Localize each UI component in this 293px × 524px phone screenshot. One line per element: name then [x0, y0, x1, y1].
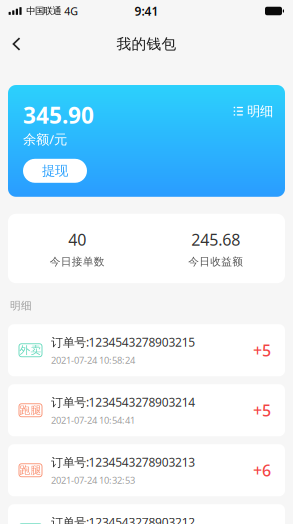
staticText: 今日接单数 — [50, 255, 105, 268]
staticText: 我的钱包 — [116, 35, 176, 53]
staticText: 订单号:1234543278903214 — [51, 394, 195, 410]
staticText: +6 — [253, 460, 271, 481]
button[interactable]: 明细 — [234, 100, 273, 119]
staticText: 345.90 — [23, 100, 94, 130]
button[interactable]: 外卖 — [8, 324, 285, 376]
staticText: 订单号:1234543278903215 — [51, 334, 195, 350]
staticText: 订单号:1234543278903213 — [51, 454, 195, 470]
staticText: +5 — [253, 340, 271, 361]
staticText: 2021-07-24 10:32:53 — [51, 474, 135, 486]
staticText: +5 — [253, 400, 271, 421]
button[interactable]: 外卖 — [8, 504, 285, 524]
button[interactable]: Back — [0, 22, 33, 66]
staticText: 今日收益额 — [188, 255, 243, 268]
staticText: 跑腿 — [19, 464, 41, 477]
button[interactable]: 提现 — [23, 159, 87, 183]
staticText: 9:41 — [134, 3, 158, 19]
staticText: 余额/元 — [23, 130, 67, 148]
staticText: 2021-07-24 10:54:41 — [51, 414, 135, 426]
staticText: 40 — [68, 229, 86, 250]
staticText: 2021-07-24 10:58:24 — [51, 354, 135, 366]
staticText: 外卖 — [19, 344, 41, 357]
staticText: 提现 — [42, 163, 68, 179]
staticText: 订单号:1234543278903212 — [51, 514, 195, 524]
staticText: 245.68 — [191, 229, 240, 250]
staticText: 中国联通 — [26, 5, 61, 17]
staticText: 明细 — [247, 103, 273, 119]
staticText: 明细 — [10, 299, 32, 312]
button[interactable]: 跑腿 — [8, 384, 285, 436]
button[interactable]: 跑腿 — [8, 444, 285, 496]
staticText: 跑腿 — [19, 404, 41, 417]
staticText: 4G — [64, 4, 78, 18]
